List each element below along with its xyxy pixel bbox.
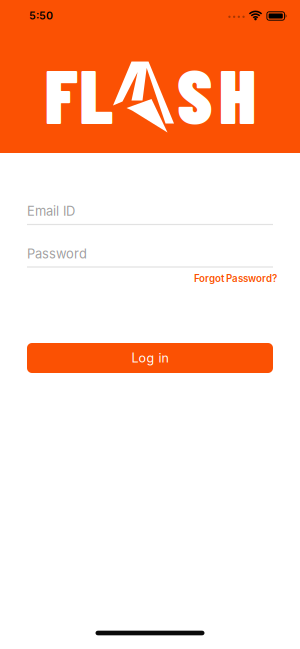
staticText: Email ID [27,203,75,219]
staticText: S [177,48,212,139]
staticText: 5:50 [29,9,53,22]
button[interactable]: Log in [27,343,273,373]
staticText: L [80,48,114,139]
staticText: F [45,48,78,139]
staticText: Log in [131,350,168,366]
staticText: H [219,48,256,139]
staticText: Password [27,246,87,261]
staticText: Forgot Password? [194,273,277,284]
button[interactable]: Forgot Password? [194,273,277,284]
